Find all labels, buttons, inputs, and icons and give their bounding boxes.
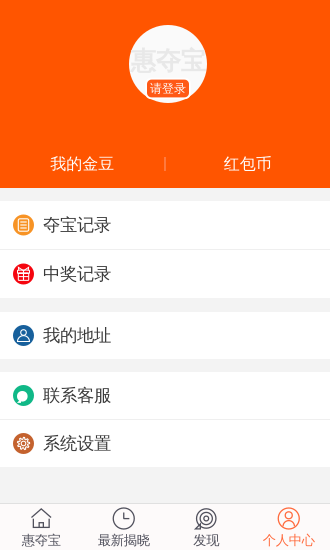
staticText: 请登录: [150, 81, 186, 96]
button[interactable]: 我的地址: [0, 312, 330, 359]
staticText: 个人中心: [263, 532, 315, 548]
staticText: 联系客服: [43, 385, 111, 406]
button[interactable]: 我的金豆: [0, 153, 164, 175]
button[interactable]: 发现: [165, 504, 247, 550]
staticText: 夺宝记录: [43, 214, 111, 236]
button[interactable]: 系统设置: [0, 420, 330, 467]
button[interactable]: 联系客服: [0, 372, 330, 419]
staticText: 我的金豆: [50, 154, 114, 174]
staticText: 惠夺宝: [130, 45, 205, 76]
staticText: 发现: [193, 532, 219, 548]
button[interactable]: 惠夺宝: [0, 504, 82, 550]
staticText: 红包币: [224, 154, 272, 174]
button[interactable]: 请登录: [145, 78, 191, 99]
staticText: 最新揭晓: [98, 532, 150, 548]
staticText: 惠夺宝: [22, 532, 61, 548]
staticText: 我的地址: [43, 325, 111, 346]
button[interactable]: 中奖记录: [0, 250, 330, 298]
button[interactable]: 个人中心: [247, 504, 330, 550]
staticText: 系统设置: [43, 433, 111, 454]
staticText: 中奖记录: [43, 263, 111, 285]
button[interactable]: 红包币: [166, 153, 330, 175]
button[interactable]: 最新揭晓: [82, 504, 165, 550]
button[interactable]: 夺宝记录: [0, 201, 330, 249]
